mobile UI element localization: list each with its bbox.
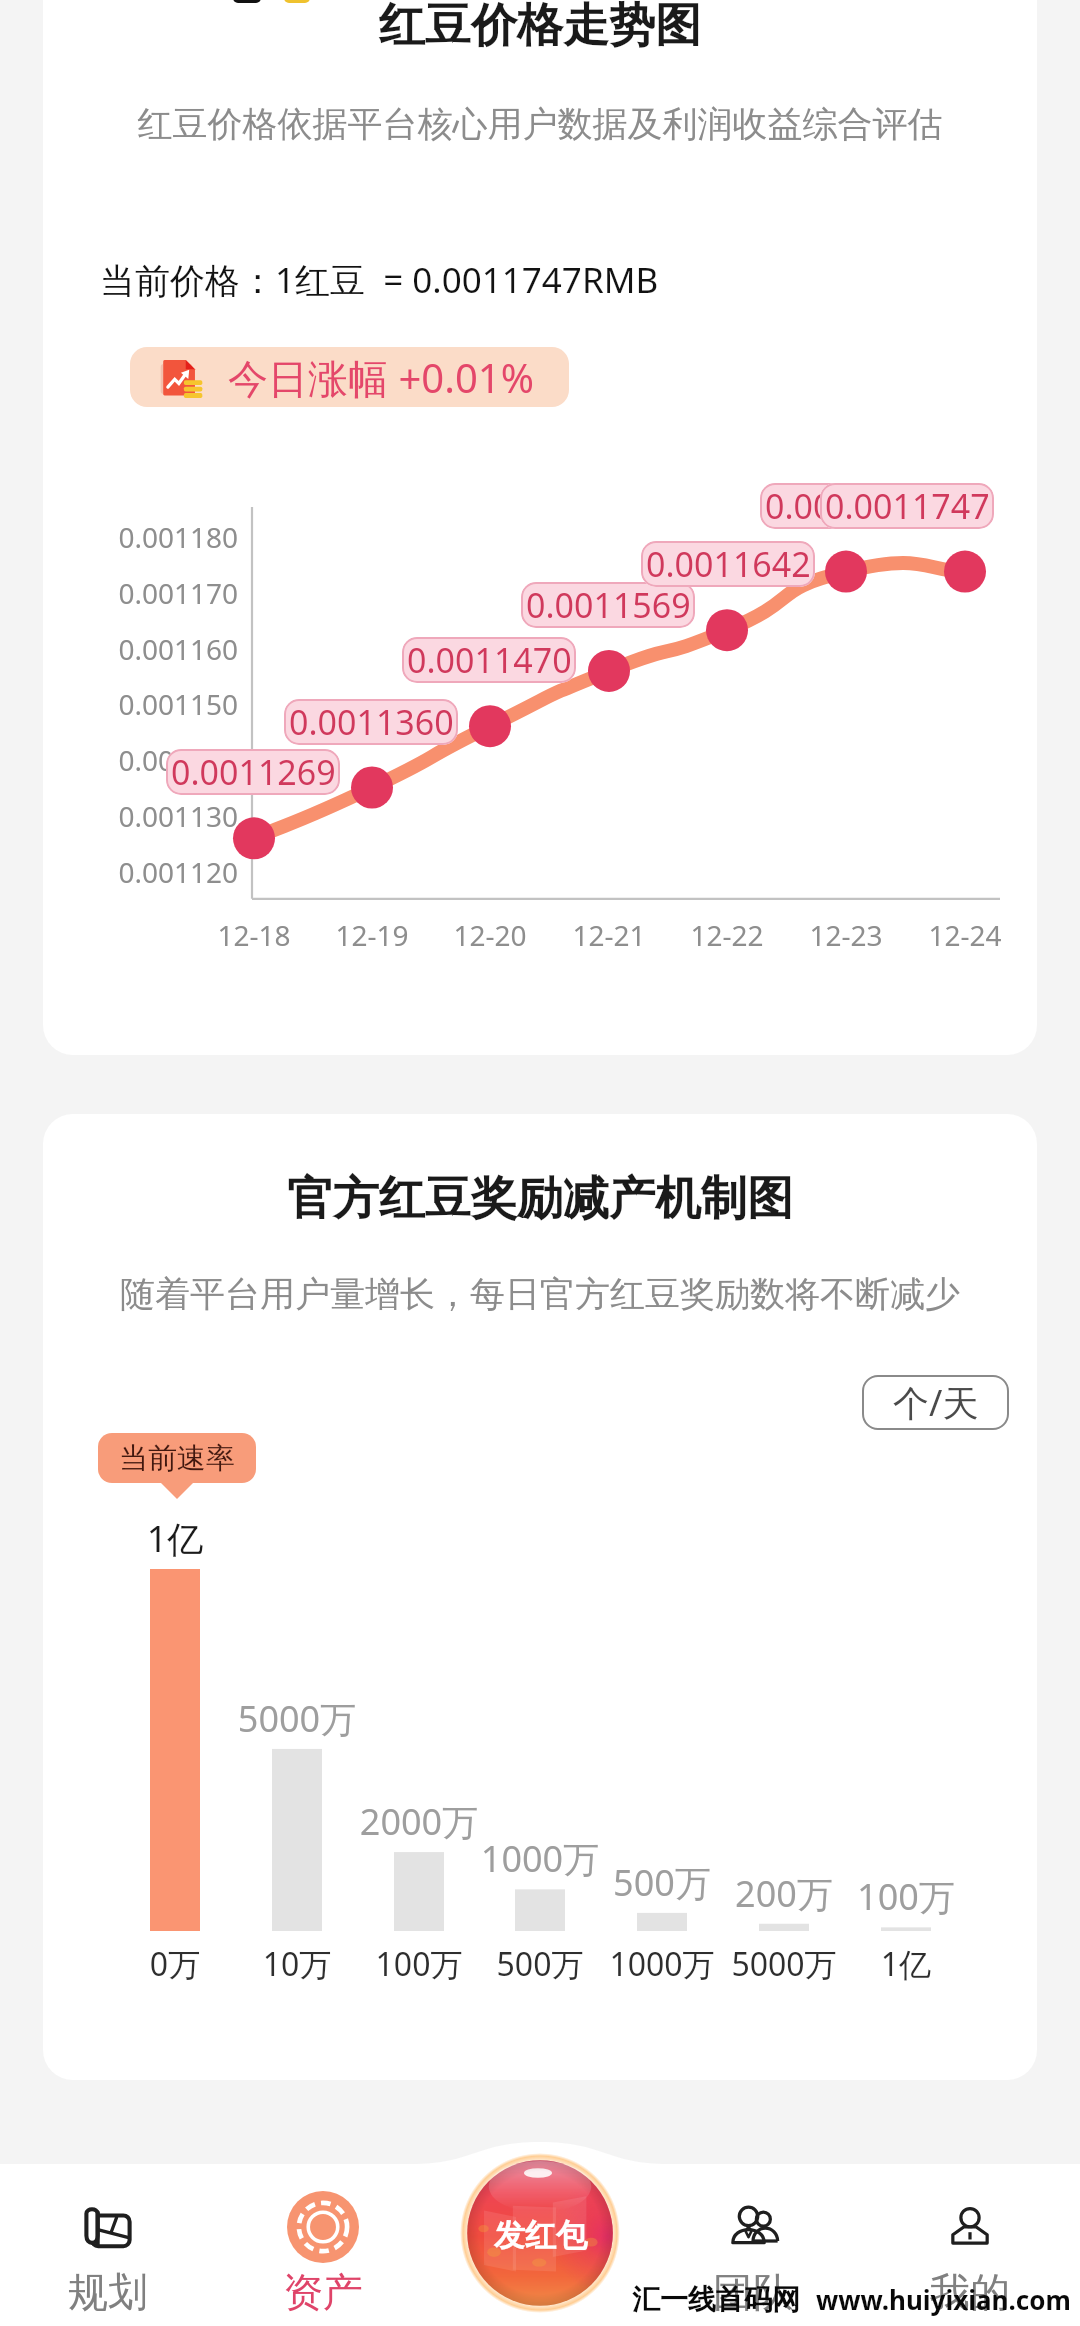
staticText: 12-18 (194, 916, 314, 954)
staticText: 0.0011569 (526, 582, 691, 628)
staticText: 2000万 (319, 1797, 519, 1846)
staticText: 12-21 (549, 916, 669, 954)
staticText: 当前速率 (119, 1440, 235, 1477)
staticText: 当前价格：1红豆 = 0.0011747RMB (100, 256, 659, 304)
staticText: 0.001160 (0, 630, 238, 668)
staticText: 1亿 (75, 1514, 275, 1563)
staticText: 资产 (283, 2267, 363, 2317)
staticText: 5000万 (197, 1694, 397, 1743)
button[interactable]: 发红包 (460, 2153, 620, 2313)
staticText: 100万 (806, 1872, 1006, 1921)
staticText: 0.001130 (0, 797, 238, 835)
staticText: 5000万 (684, 1942, 884, 1986)
staticText: 红豆价格走势图 (0, 0, 1080, 55)
staticText: 1000万 (562, 1942, 762, 1986)
staticText: www.huiyixian.com (816, 2282, 1071, 2317)
button[interactable]: 个/天 (862, 1375, 1009, 1430)
staticText: 0.0011470 (407, 637, 572, 683)
staticText: 12-24 (905, 916, 1025, 954)
button[interactable]: 我的 (880, 2174, 1060, 2316)
staticText: 12-20 (430, 916, 550, 954)
staticText: 0万 (75, 1942, 275, 1986)
staticText: 500万 (440, 1942, 640, 1986)
staticText: 500万 (562, 1858, 762, 1907)
staticText: 0.001180 (0, 518, 238, 556)
staticText: 随着平台用户量增长，每日官方红豆奖励数将不断减少 (0, 1272, 1080, 1316)
staticText: 0.001140 (0, 741, 238, 779)
staticText: 10万 (197, 1942, 397, 1986)
button[interactable]: 今日涨幅 +0.01% (130, 347, 569, 407)
staticText: 12-23 (786, 916, 906, 954)
staticText: 0.0011642 (646, 541, 811, 587)
staticText: 规划 (68, 2267, 148, 2317)
staticText: 发红包 (494, 2216, 587, 2255)
staticText: 0.0011269 (171, 749, 336, 795)
staticText: 团队 (713, 2267, 793, 2317)
staticText: 0.0011747 (765, 483, 930, 529)
staticText: 0.0011747 (825, 483, 990, 529)
staticText: 官方红豆奖励减产机制图 (0, 1170, 1080, 1228)
staticText: 0.0011360 (289, 699, 454, 745)
staticText: 汇一线首码网 (632, 2282, 800, 2317)
staticText: 1000万 (440, 1834, 640, 1883)
staticText: 0.001150 (0, 685, 238, 723)
staticText: 今日涨幅 +0.01% (228, 350, 534, 405)
staticText: 1亿 (806, 1942, 1006, 1986)
staticText: 我的 (930, 2267, 1010, 2317)
button[interactable]: 资产 (233, 2174, 413, 2316)
staticText: 个/天 (893, 1378, 979, 1427)
button[interactable]: 规划 (18, 2174, 198, 2316)
staticText: 100万 (319, 1942, 519, 1986)
staticText: 12-22 (667, 916, 787, 954)
staticText: 12-19 (312, 916, 432, 954)
staticText: 红豆价格依据平台核心用户数据及利润收益综合评估 (0, 102, 1080, 146)
button[interactable]: 团队 (663, 2174, 843, 2316)
staticText: 0.001120 (0, 853, 238, 891)
staticText: 200万 (684, 1869, 884, 1918)
staticText: 0.001170 (0, 574, 238, 612)
